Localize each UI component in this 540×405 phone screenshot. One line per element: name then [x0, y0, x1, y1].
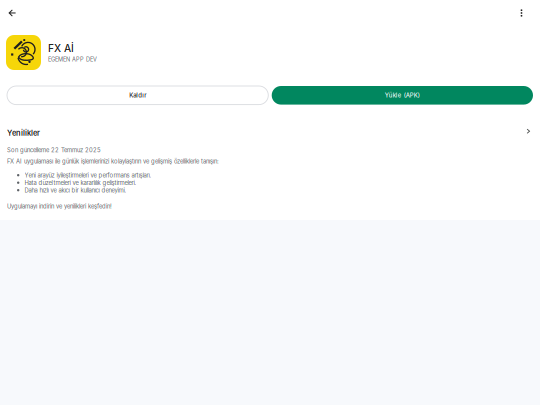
staticText: Uygulamayı indirin ve yenilikleri keşfed… — [7, 203, 112, 210]
button[interactable]: Kaldır — [7, 86, 268, 105]
staticText: FX Aİ — [48, 42, 74, 54]
staticText: Kaldır — [129, 92, 146, 99]
button[interactable]: Yenilikler — [0, 129, 540, 141]
staticText: Hata düzeltmeleri ve kararlılık geliştir… — [25, 179, 137, 186]
staticText: EGEMEN APP DEV — [48, 56, 97, 63]
staticText: Son güncelleme 22 Temmuz 2025 — [7, 147, 101, 154]
staticText: Yeni arayüz iyileştirmeleri ve performan… — [25, 172, 152, 179]
button[interactable]: Yükle (APK) — [272, 86, 533, 105]
staticText: Yükle (APK) — [385, 92, 420, 99]
staticText: Daha hızlı ve akıcı bir kullanıcı deneyi… — [25, 187, 127, 194]
staticText: Yenilikler — [7, 129, 40, 138]
button[interactable]: More options — [503, 0, 540, 26]
button[interactable]: Back — [0, 0, 24, 26]
staticText: FX AI uygulaması ile günlük işlemleriniz… — [7, 158, 219, 165]
